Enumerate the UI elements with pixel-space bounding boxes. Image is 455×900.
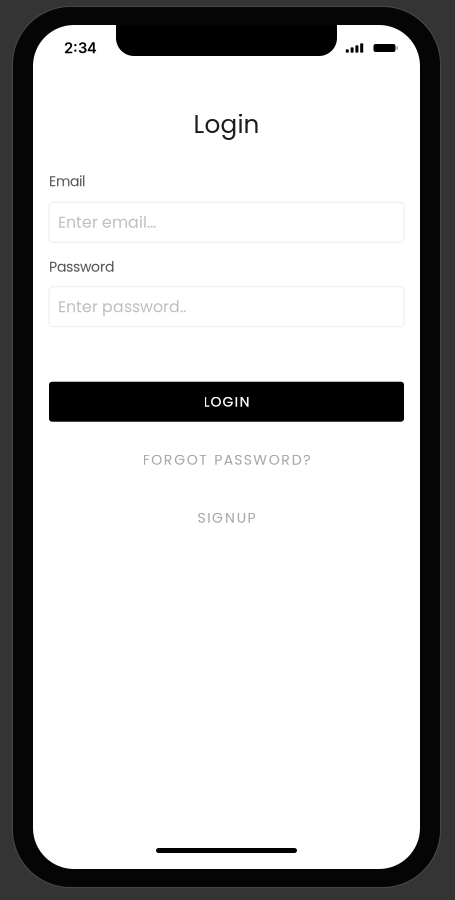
staticText: 2:34 (64, 39, 97, 57)
staticText: Password (49, 257, 114, 277)
staticText: SIGNUP (197, 508, 255, 527)
staticText: LOGIN (203, 392, 249, 411)
button[interactable]: FORGOT PASSWORD? (49, 450, 404, 470)
staticText: Enter email... (58, 211, 156, 233)
button[interactable]: SIGNUP (49, 508, 404, 528)
staticText: Enter password.. (58, 296, 186, 318)
button[interactable]: LOGIN (49, 382, 404, 422)
staticText: FORGOT PASSWORD? (143, 450, 310, 469)
staticText: Login (193, 107, 259, 141)
staticText: Email (49, 171, 85, 191)
